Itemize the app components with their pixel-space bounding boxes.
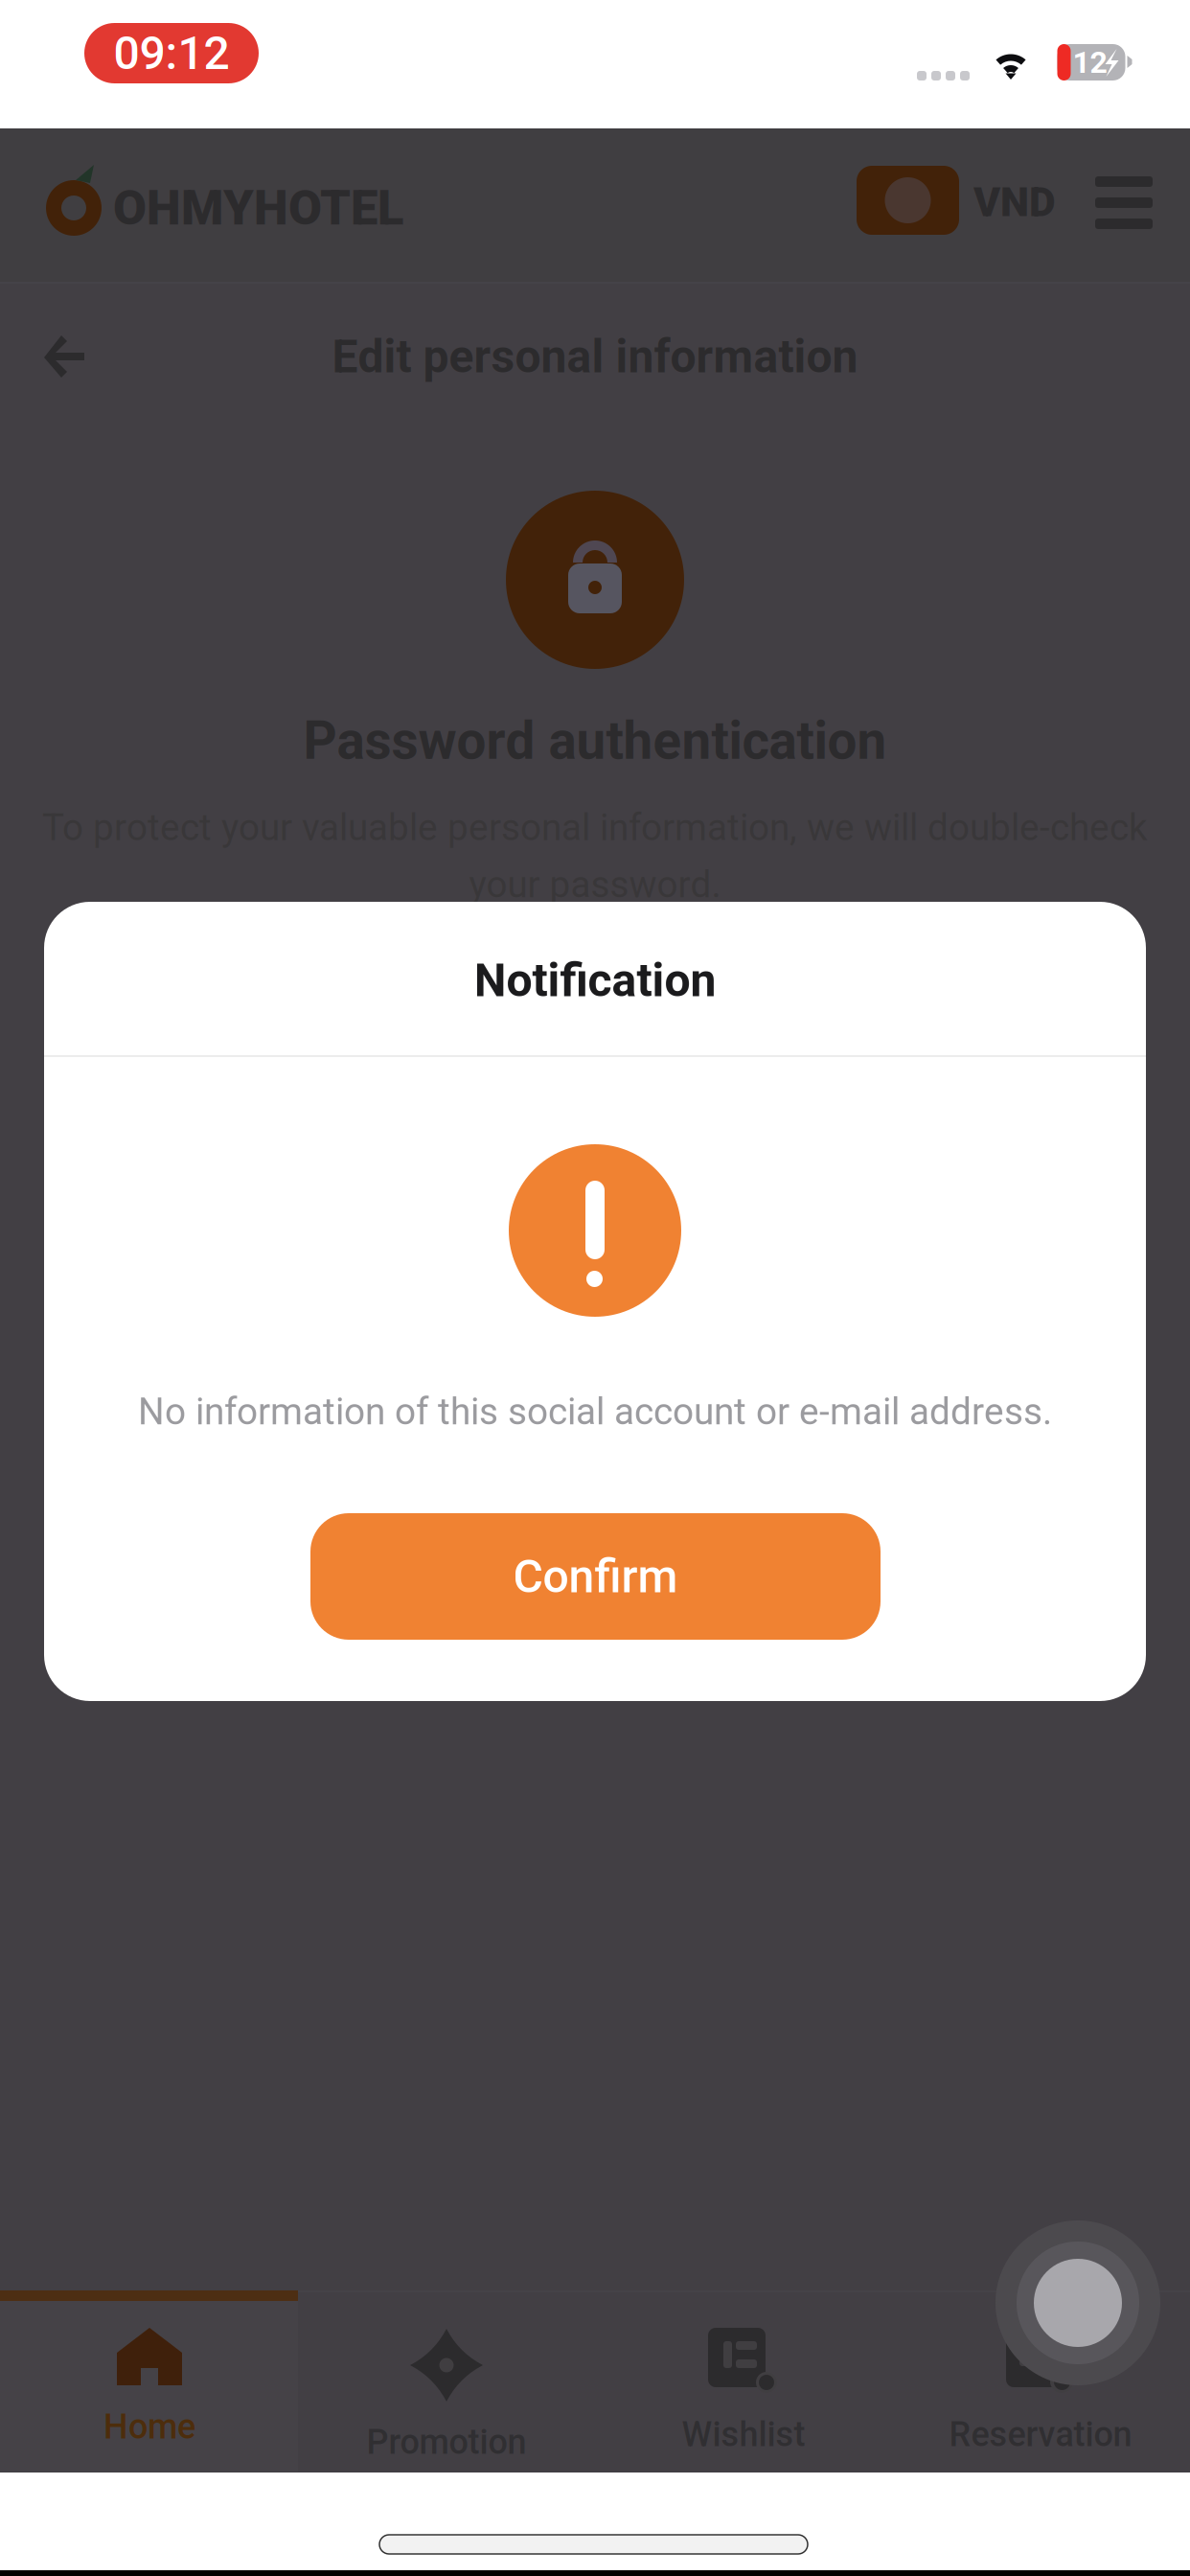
staticText: Edit personal information <box>332 330 858 383</box>
button[interactable]: Promotion <box>298 2301 595 2472</box>
staticText: Password authentication <box>303 710 887 772</box>
button[interactable]: Home <box>1 2301 298 2472</box>
staticText: Confirm <box>513 1550 678 1603</box>
staticText: VND <box>973 178 1056 226</box>
staticText: 12 <box>1073 44 1107 80</box>
staticText: Wishlist <box>682 2414 805 2454</box>
button[interactable]: Wishlist <box>595 2301 892 2472</box>
staticText: Notification <box>474 953 716 1007</box>
staticText: No information of this social account or… <box>138 1390 1052 1433</box>
staticText: Promotion <box>366 2422 526 2462</box>
staticText: your password. <box>469 863 721 906</box>
button[interactable]: Reservation <box>892 2301 1189 2472</box>
staticText: 09:12 <box>114 26 229 80</box>
staticText: Reservation <box>949 2414 1132 2454</box>
button[interactable]: Confirm <box>310 1513 881 1640</box>
staticText: OHMYHOTEL <box>113 179 403 236</box>
staticText: To protect your valuable personal inform… <box>42 806 1148 849</box>
staticText: Home <box>103 2406 195 2447</box>
